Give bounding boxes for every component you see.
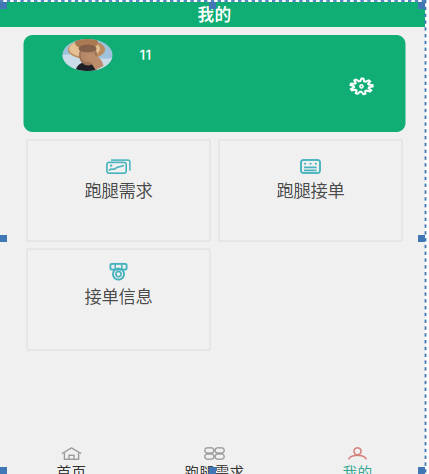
staticText: 接单信息 [84, 283, 152, 308]
button[interactable]: 我的 [286, 432, 429, 474]
button[interactable]: 跑腿需求 [27, 140, 210, 241]
staticText: 跑腿需求 [84, 177, 152, 202]
staticText: 首页 [56, 461, 86, 474]
staticText: 我的 [342, 461, 372, 474]
button[interactable]: 接单信息 [27, 249, 210, 350]
button[interactable]: 跑腿需求 [143, 432, 286, 474]
button[interactable]: 首页 [0, 432, 143, 474]
button[interactable]: Settings [349, 78, 373, 95]
staticText: 跑腿接单 [276, 177, 344, 202]
button[interactable]: 跑腿接单 [219, 140, 402, 241]
staticText: 我的 [197, 1, 231, 25]
staticText: 跑腿需求 [184, 461, 244, 474]
staticText: 11 [139, 47, 151, 63]
